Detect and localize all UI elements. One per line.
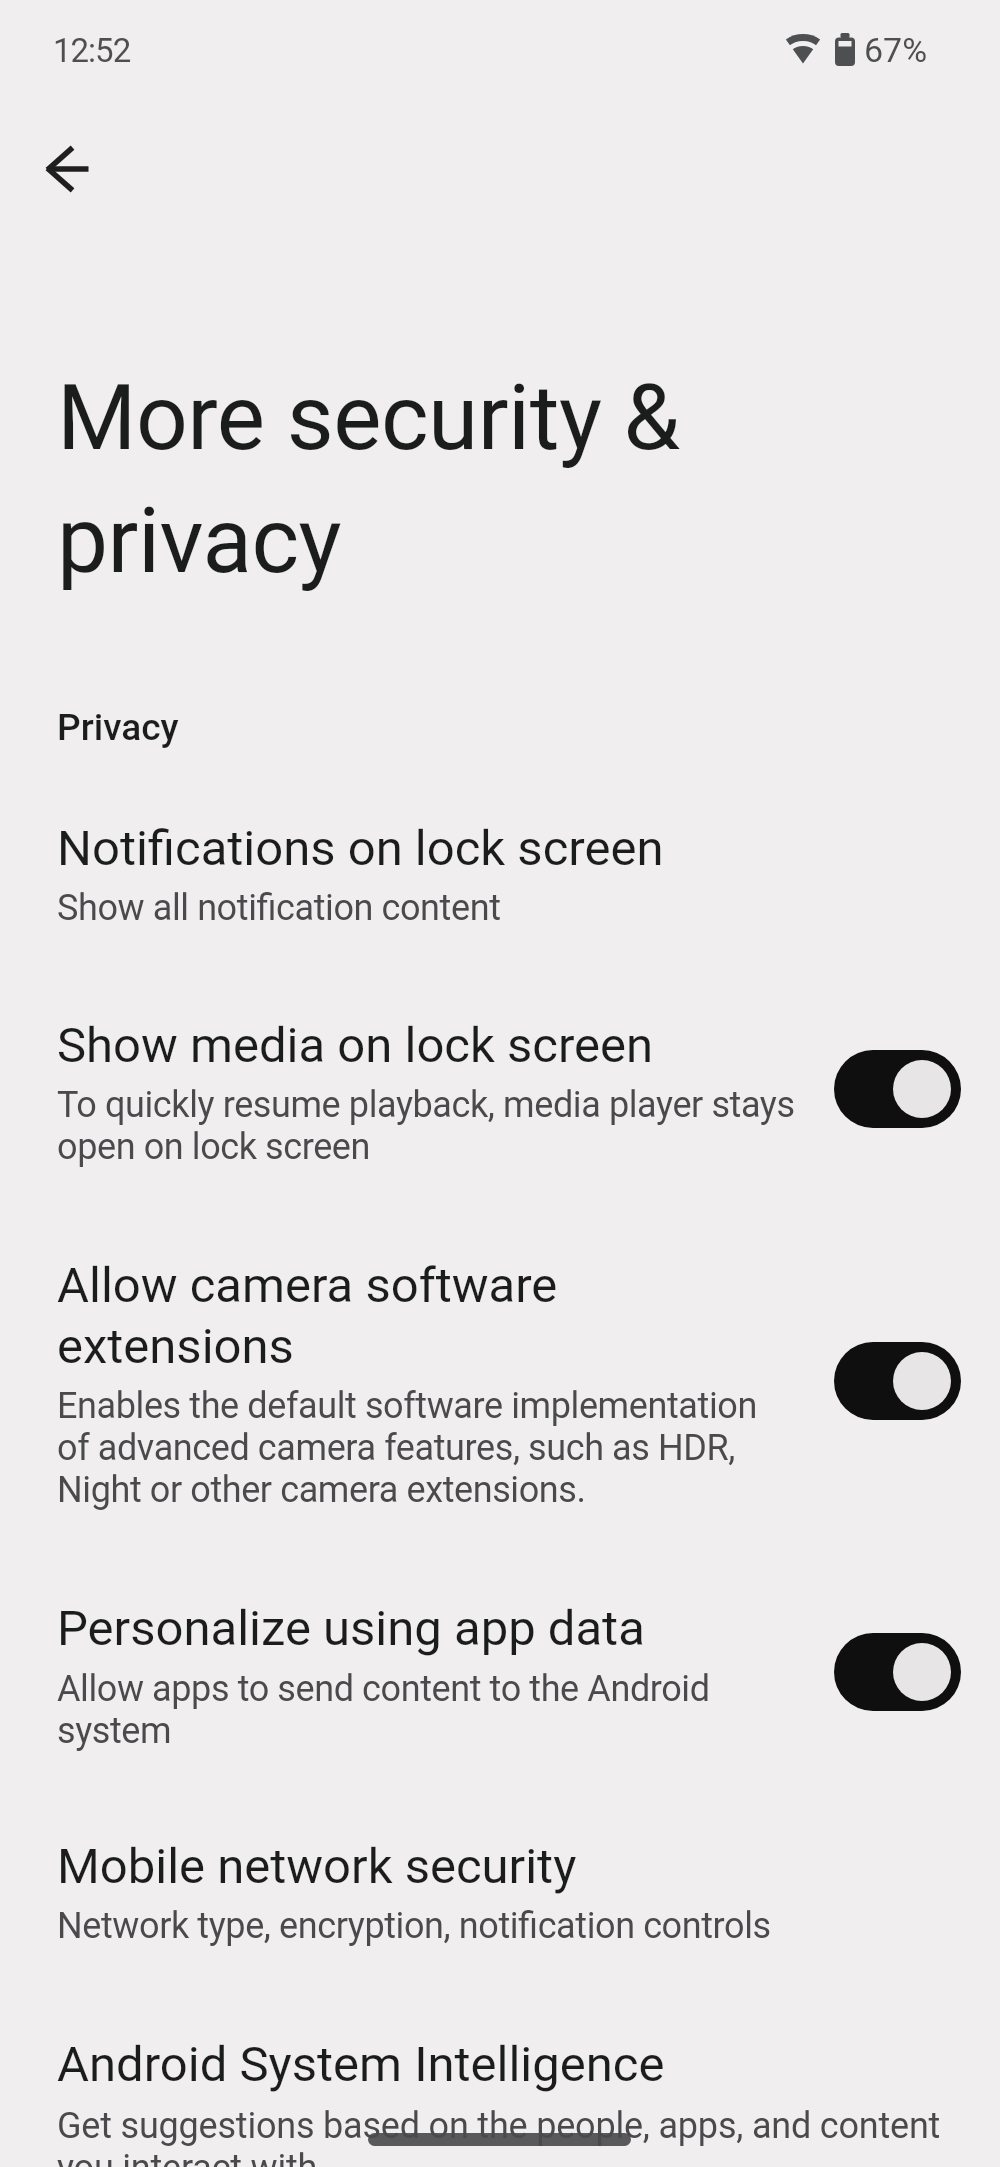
staticText: 12:52 [53, 31, 131, 70]
staticText: Notifications on lock screen [57, 820, 664, 877]
staticText: Allow apps to send content to the Androi… [57, 1668, 710, 1752]
staticText: Android System Intelligence [57, 2036, 665, 2093]
staticText: Allow camera software extensions [57, 1257, 558, 1375]
staticText: Network type, encryption, notification c… [57, 1905, 771, 1947]
button[interactable] [38, 139, 98, 199]
staticText: 67% [864, 30, 928, 70]
staticText: Get suggestions based on the people, app… [57, 2105, 941, 2167]
button[interactable] [0, 770, 1000, 972]
button[interactable] [0, 1988, 1000, 2167]
staticText: Show all notification content [57, 887, 501, 929]
staticText: Personalize using app data [57, 1600, 645, 1657]
staticText: Enables the default software implementat… [57, 1385, 757, 1511]
button[interactable] [834, 1050, 961, 1128]
button[interactable] [0, 1795, 1000, 1988]
button[interactable] [834, 1633, 961, 1711]
staticText: To quickly resume playback, media player… [57, 1084, 795, 1168]
button[interactable] [0, 1558, 1000, 1795]
button[interactable] [834, 1342, 961, 1420]
staticText: Privacy [57, 706, 179, 749]
staticText: Mobile network security [57, 1838, 577, 1895]
button[interactable] [0, 1215, 1000, 1558]
staticText: More security & privacy [57, 365, 680, 594]
staticText: Show media on lock screen [57, 1017, 654, 1074]
button[interactable] [0, 972, 1000, 1215]
